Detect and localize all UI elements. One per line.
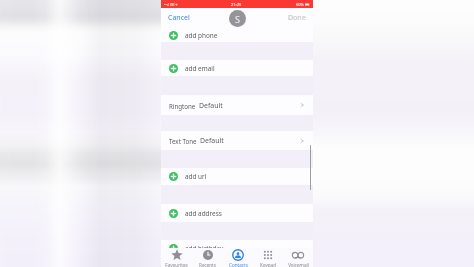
button[interactable]: Text Tone [161,131,313,150]
staticText: Done [288,13,306,23]
staticText: Recents [199,262,216,267]
button[interactable]: add url [161,168,313,185]
button[interactable]: Keypad [253,248,283,267]
staticText: 60% [296,2,304,7]
button[interactable]: add address [161,204,313,222]
button[interactable]: Favourites [161,248,192,267]
button[interactable]: add phone [161,28,313,42]
staticText: add phone [185,31,218,40]
staticText: add url [185,172,207,181]
staticText: Favourites [165,262,188,267]
staticText: Default [199,101,223,110]
staticText: add address [185,209,222,218]
staticText: S [235,13,240,25]
button[interactable]: Cancel [166,11,192,25]
staticText: 21:25 [231,2,242,7]
staticText: Voicemail [288,262,309,267]
staticText: add birthday [185,244,224,253]
button[interactable]: Contacts [223,248,253,267]
staticText: Text Tone [169,137,197,145]
button[interactable]: Contact photo [229,10,246,27]
staticText: Default [200,136,224,145]
staticText: add email [185,64,215,73]
button[interactable]: Voicemail [283,248,313,267]
button[interactable]: Recents [192,248,223,267]
staticText: Ringtone [169,102,196,110]
button[interactable]: add birthday [161,240,313,257]
button[interactable]: add email [161,60,313,76]
button[interactable]: Done [286,11,308,25]
staticText: Cancel [168,13,190,23]
button[interactable]: Ringtone [161,95,313,115]
staticText: Keypad [260,262,276,267]
staticText: ••ıl EE ▾ [164,2,178,7]
staticText: Contacts [229,262,248,267]
